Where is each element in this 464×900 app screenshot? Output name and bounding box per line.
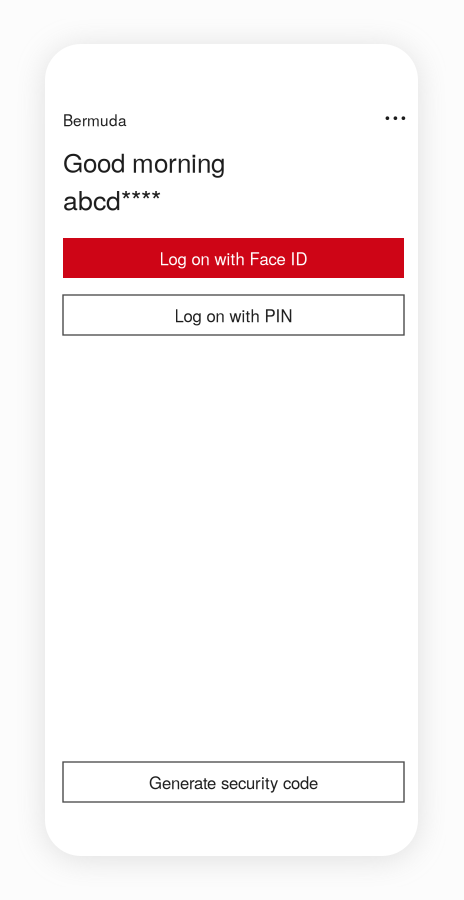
staticText: Generate security code: [149, 770, 318, 794]
button[interactable]: Log on with PIN: [63, 295, 404, 335]
staticText: Log on with Face ID: [159, 246, 307, 270]
staticText: Log on with PIN: [174, 303, 292, 327]
button[interactable]: Generate security code: [63, 762, 404, 802]
staticText: abcd****: [63, 180, 161, 218]
button[interactable]: Log on with Face ID: [63, 238, 404, 278]
button[interactable]: More options: [375, 103, 415, 133]
staticText: Good morning: [63, 143, 225, 180]
staticText: Bermuda: [63, 109, 127, 131]
